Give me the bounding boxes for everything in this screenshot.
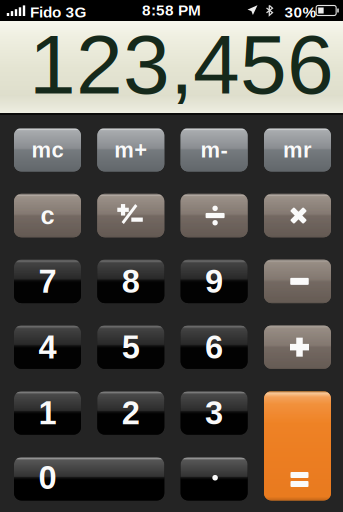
- button[interactable]: 6: [181, 325, 248, 369]
- button[interactable]: Decimal point: [181, 457, 248, 500]
- button[interactable]: mc: [14, 128, 81, 171]
- button[interactable]: m-: [181, 128, 248, 171]
- button[interactable]: mr: [264, 128, 331, 171]
- staticText: 8: [122, 263, 140, 300]
- staticText: 7: [38, 263, 56, 300]
- staticText: Fido: [30, 4, 61, 21]
- staticText: 2: [122, 395, 140, 431]
- button[interactable]: Divide: [181, 194, 248, 237]
- button[interactable]: Equals: [264, 391, 331, 500]
- staticText: 30%: [284, 4, 316, 21]
- button[interactable]: 7: [14, 260, 81, 303]
- button[interactable]: c: [14, 194, 81, 237]
- staticText: m+: [114, 137, 147, 162]
- staticText: m-: [201, 137, 228, 162]
- button[interactable]: 9: [181, 260, 248, 303]
- button[interactable]: 5: [97, 325, 164, 369]
- button[interactable]: Plus: [264, 325, 331, 369]
- staticText: 4: [38, 329, 56, 365]
- button[interactable]: 1: [14, 391, 81, 435]
- button[interactable]: 3: [181, 391, 248, 435]
- staticText: mc: [31, 137, 63, 162]
- staticText: 3: [205, 395, 223, 431]
- button[interactable]: Multiply: [264, 194, 331, 237]
- staticText: 0: [38, 459, 56, 496]
- staticText: 5: [122, 329, 140, 365]
- button[interactable]: 8: [97, 260, 164, 303]
- staticText: mr: [283, 137, 312, 162]
- button[interactable]: Plus minus: [97, 194, 164, 237]
- staticText: 8:58 PM: [142, 2, 201, 19]
- staticText: 3G: [65, 4, 86, 21]
- button[interactable]: Minus: [264, 260, 331, 303]
- button[interactable]: 0: [14, 457, 164, 500]
- staticText: 1: [38, 395, 56, 431]
- button[interactable]: m+: [97, 128, 164, 171]
- staticText: 6: [205, 329, 223, 365]
- staticText: 123,456: [29, 18, 334, 111]
- staticText: 9: [205, 263, 223, 300]
- button[interactable]: 2: [97, 391, 164, 435]
- button[interactable]: 4: [14, 325, 81, 369]
- staticText: c: [40, 201, 54, 230]
